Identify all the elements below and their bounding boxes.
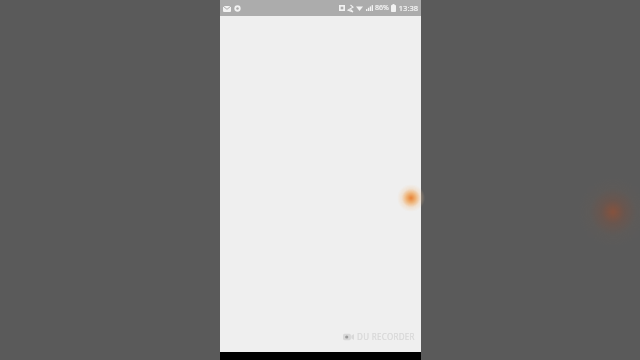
button[interactable]: DU Recorder watermark <box>343 331 415 342</box>
staticText: 13:38 <box>398 3 418 13</box>
staticText: 86% <box>375 3 389 13</box>
staticText: DU RECORDER <box>357 331 415 342</box>
